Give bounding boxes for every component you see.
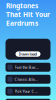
staticText: Pick Your Choice [14,89,38,94]
button[interactable]: Late Night Vibes [5,99,50,100]
button[interactable]: Classic Alarm Tone [5,75,50,84]
staticText: Feel the Bass Drop [14,65,38,70]
staticText: Classic Alarm Tone [14,77,38,82]
button[interactable]: Pick Your Choice [5,87,50,96]
button[interactable]: Feel the Bass Drop [5,63,50,72]
button[interactable]: Download [15,51,40,57]
staticText: Loud Ringtones That Hit Your Eardrums [6,0,50,28]
staticText: Download [18,51,37,57]
